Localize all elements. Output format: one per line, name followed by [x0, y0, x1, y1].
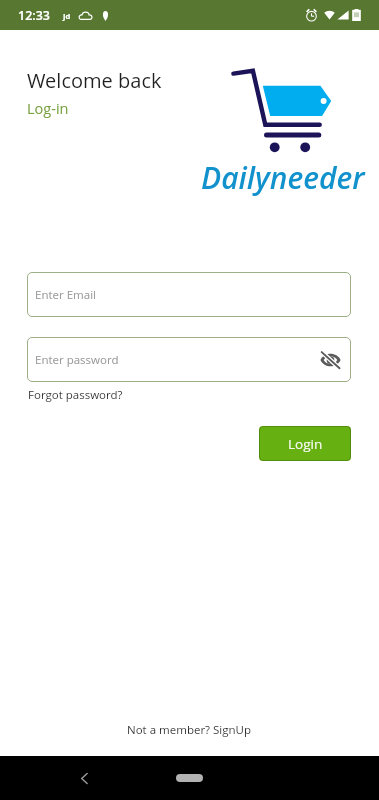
- button[interactable]: Forgot password?: [28, 387, 123, 403]
- button[interactable]: Toggle password visibility: [320, 351, 341, 369]
- button[interactable]: Home: [176, 774, 203, 782]
- button[interactable]: Log-in: [27, 99, 69, 119]
- staticText: Dailyneeder: [201, 157, 365, 198]
- staticText: Welcome back: [27, 67, 162, 94]
- button[interactable]: Not a member? SignUp: [127, 722, 252, 738]
- staticText: Login: [288, 435, 323, 453]
- staticText: 12:33: [18, 7, 50, 24]
- staticText: Jd: [63, 11, 71, 21]
- button[interactable]: Back: [70, 764, 98, 792]
- staticText: Enter Email: [35, 287, 96, 303]
- button[interactable]: Enter Email: [27, 272, 351, 317]
- staticText: Enter password: [35, 352, 119, 368]
- button[interactable]: Login: [259, 426, 351, 461]
- button[interactable]: Enter password: [27, 337, 351, 382]
